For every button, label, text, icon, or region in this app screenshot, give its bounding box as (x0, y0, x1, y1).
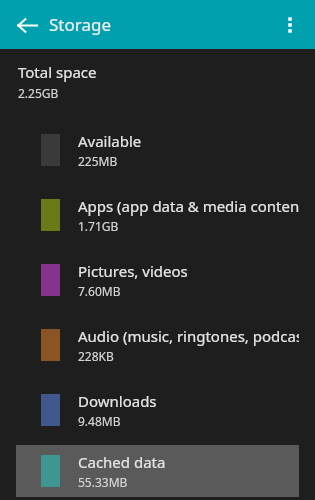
staticText: Apps (app data & media content) (78, 196, 299, 216)
staticText: Cached data (78, 452, 166, 472)
button[interactable]: Downloads (16, 380, 299, 439)
staticText: 225MB (78, 153, 118, 169)
staticText: 9.48MB (78, 413, 121, 429)
staticText: Audio (music, ringtones, podcasts) (78, 326, 299, 346)
button[interactable]: Pictures, videos (16, 250, 299, 309)
button[interactable]: More options (269, 4, 311, 46)
staticText: 2.25GB (18, 85, 59, 101)
staticText: Downloads (78, 391, 157, 411)
staticText: 7.60MB (78, 283, 121, 299)
staticText: 1.71GB (78, 218, 119, 234)
staticText: Total space (18, 62, 97, 82)
staticText: 55.33MB (78, 474, 128, 490)
staticText: Pictures, videos (78, 261, 188, 281)
button[interactable]: Back (8, 6, 46, 44)
button[interactable]: Cached data (16, 445, 299, 497)
button[interactable]: Available (16, 120, 299, 179)
button[interactable]: Apps (app data & media content) (16, 185, 299, 244)
staticText: Storage (49, 13, 112, 36)
staticText: 228KB (78, 348, 114, 364)
staticText: Available (78, 131, 142, 151)
button[interactable]: Audio (music, ringtones, podcasts) (16, 315, 299, 374)
